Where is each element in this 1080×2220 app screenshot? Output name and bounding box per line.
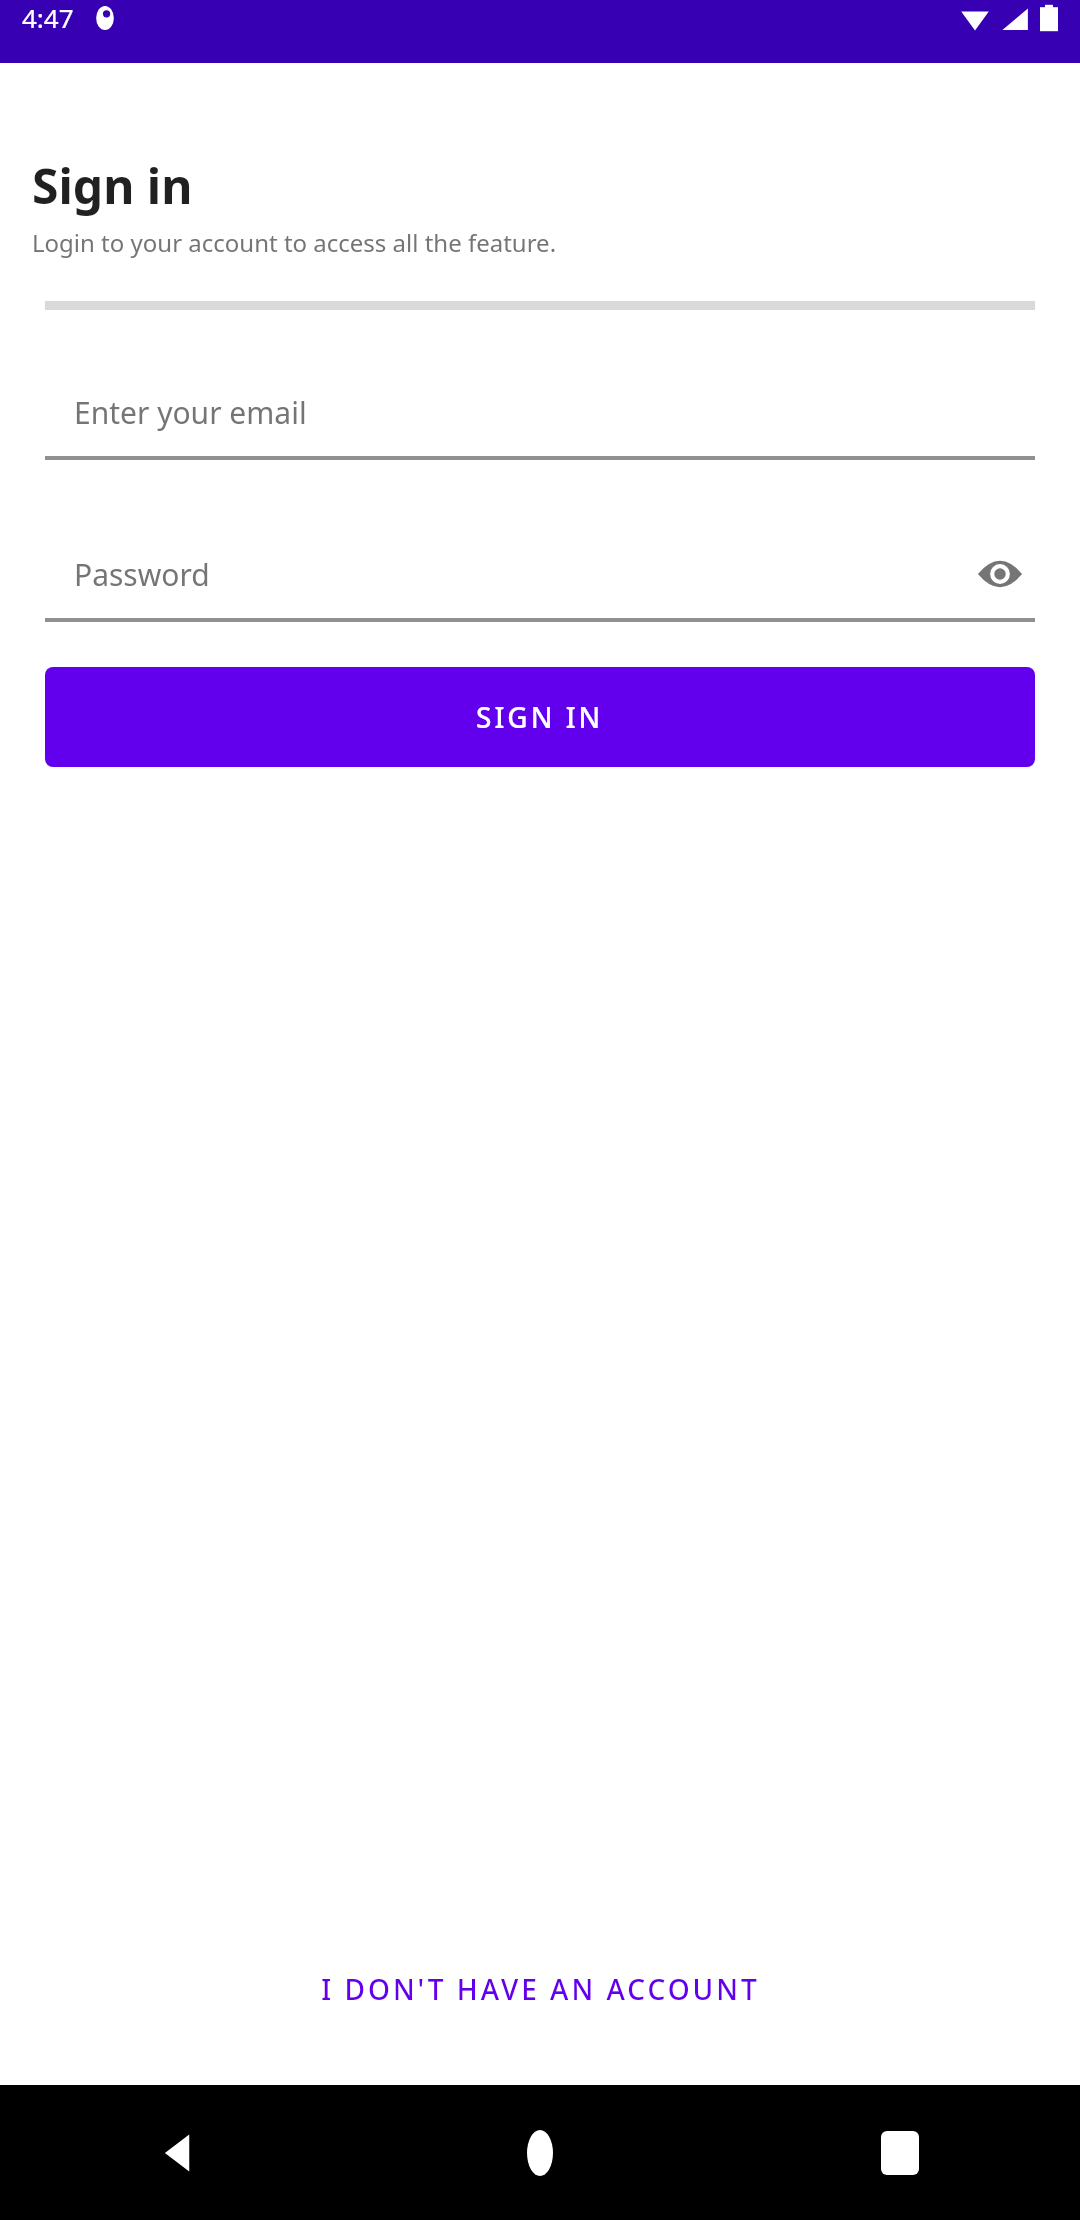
button[interactable]: Enter your email <box>45 368 1035 460</box>
button[interactable]: Back <box>0 2085 360 2220</box>
staticText: Password <box>74 554 210 595</box>
staticText: 4:47 <box>22 0 74 35</box>
staticText: I DON'T HAVE AN ACCOUNT <box>321 1970 760 2008</box>
button[interactable]: I DON'T HAVE AN ACCOUNT <box>0 1941 1080 2037</box>
button[interactable]: Password <box>45 530 1035 622</box>
staticText: Sign in <box>32 153 193 218</box>
button[interactable]: Recent apps <box>720 2085 1080 2220</box>
staticText: Login to your account to access all the … <box>32 226 557 259</box>
button[interactable]: SIGN IN <box>45 667 1035 767</box>
staticText: SIGN IN <box>476 698 604 736</box>
staticText: Enter your email <box>74 392 307 433</box>
button[interactable]: Show password <box>965 539 1035 609</box>
button[interactable]: Home <box>360 2085 720 2220</box>
